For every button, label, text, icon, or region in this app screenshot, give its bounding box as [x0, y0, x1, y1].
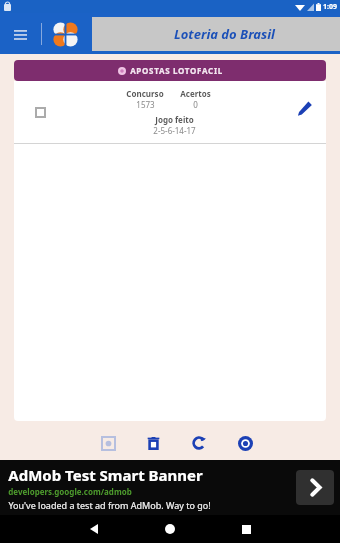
button[interactable]: APOSTAS LOTOFACIL: [14, 60, 326, 81]
staticText: You've loaded a test ad from AdMob. Way …: [8, 499, 211, 511]
staticText: Acertos: [180, 88, 211, 99]
button[interactable]: Select: [14, 81, 66, 143]
button[interactable]: Edit: [282, 81, 326, 143]
button[interactable]: Loteria do Brasil: [92, 17, 340, 51]
staticText: Concurso: [126, 88, 164, 99]
button[interactable]: Open ad: [296, 470, 334, 505]
staticText: 1:09: [323, 2, 337, 12]
button[interactable]: Select: [14, 81, 326, 143]
button[interactable]: Home: [157, 516, 183, 542]
button[interactable]: Delete: [131, 432, 176, 454]
staticText: Jogo feito: [155, 114, 194, 125]
staticText: APOSTAS LOTOFACIL: [130, 65, 223, 76]
staticText: 0: [193, 99, 198, 110]
button[interactable]: Back: [81, 516, 107, 542]
button[interactable]: Recents: [233, 516, 259, 542]
button[interactable]: Play: [222, 432, 268, 454]
button[interactable]: Share: [86, 432, 131, 454]
button[interactable]: Logo: [50, 19, 80, 49]
staticText: developers.google.com/admob: [8, 486, 132, 497]
staticText: Loteria do Brasil: [174, 25, 275, 43]
button[interactable]: Menu: [4, 18, 36, 50]
staticText: AdMob Test Smart Banner: [8, 465, 203, 485]
staticText: 2-5-6-14-17: [153, 125, 196, 136]
button[interactable]: Refresh: [176, 432, 222, 454]
button[interactable]: AdMob Test Smart Banner: [0, 460, 340, 515]
staticText: 1573: [136, 99, 155, 110]
